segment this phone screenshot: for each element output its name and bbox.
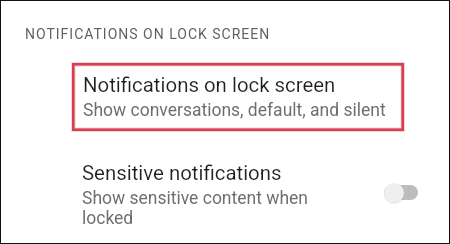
button[interactable]: Sensitive notifications: [8, 150, 438, 236]
button[interactable]: NOTIFICATIONS ON LOCK SCREEN: [8, 14, 438, 50]
button[interactable]: Notifications on lock screen: [8, 59, 438, 135]
staticText: Show conversations, default, and silent: [83, 100, 386, 121]
staticText: Show sensitive content when locked: [82, 188, 309, 228]
staticText: Notifications on lock screen: [83, 73, 336, 97]
button[interactable]: Sensitive notifications switch, off: [378, 178, 424, 208]
staticText: NOTIFICATIONS ON LOCK SCREEN: [25, 26, 271, 42]
staticText: Sensitive notifications: [82, 161, 282, 185]
